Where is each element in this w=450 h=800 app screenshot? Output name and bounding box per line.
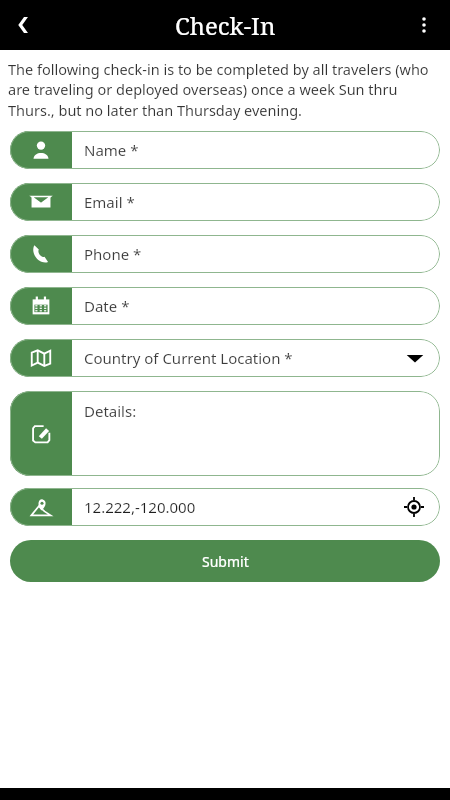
staticText: Phone * <box>84 244 142 264</box>
staticText: Check-In <box>175 9 276 42</box>
staticText: Country of Current Location * <box>84 348 293 368</box>
staticText: Name * <box>84 140 139 160</box>
staticText: Submit <box>202 552 249 571</box>
button[interactable]: Phone * <box>10 235 440 273</box>
staticText: 12.222,-120.000 <box>84 497 196 517</box>
button[interactable]: Date * <box>10 287 440 325</box>
button[interactable]: Use current location <box>400 493 428 521</box>
button[interactable]: Country of Current Location * <box>10 339 440 377</box>
button[interactable]: Name * <box>10 131 440 169</box>
staticText: Date * <box>84 296 130 316</box>
button[interactable]: Submit <box>10 540 440 582</box>
staticText: The following check-in is to be complete… <box>8 59 445 121</box>
staticText: Email * <box>84 192 135 212</box>
button[interactable]: Email * <box>10 183 440 221</box>
button[interactable]: Back <box>2 3 46 47</box>
button[interactable]: 12.222,-120.000 <box>10 488 440 526</box>
button[interactable]: Open country list <box>402 345 428 371</box>
staticText: Details: <box>84 401 137 421</box>
button[interactable]: Details: <box>10 391 440 476</box>
button[interactable]: More options <box>404 5 444 45</box>
